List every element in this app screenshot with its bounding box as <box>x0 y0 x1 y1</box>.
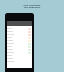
button[interactable] <box>7 33 32 36</box>
button[interactable] <box>7 45 32 48</box>
staticText: our approach <box>24 5 40 8</box>
button[interactable] <box>7 27 32 30</box>
button[interactable] <box>7 42 32 45</box>
button[interactable] <box>7 36 32 39</box>
button[interactable] <box>7 30 32 33</box>
staticText: Your priorities, <box>23 3 41 6</box>
button[interactable] <box>7 39 32 42</box>
button[interactable] <box>7 54 32 57</box>
button[interactable] <box>7 57 32 60</box>
button[interactable] <box>7 48 32 51</box>
button[interactable] <box>7 51 32 54</box>
button[interactable] <box>7 60 32 63</box>
